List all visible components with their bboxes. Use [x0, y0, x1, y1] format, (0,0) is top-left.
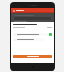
button[interactable]: Verified: [49, 33, 52, 36]
button[interactable]: More options: [51, 10, 53, 12]
button[interactable]: [13, 55, 52, 58]
button[interactable]: Menu: [12, 9, 15, 12]
button[interactable]: Menu: [11, 8, 54, 12]
button[interactable]: [13, 33, 48, 36]
button[interactable]: Home: [31, 65, 35, 69]
button[interactable]: [47, 27, 52, 28]
button[interactable]: [11, 13, 54, 22]
button[interactable]: [13, 38, 44, 41]
